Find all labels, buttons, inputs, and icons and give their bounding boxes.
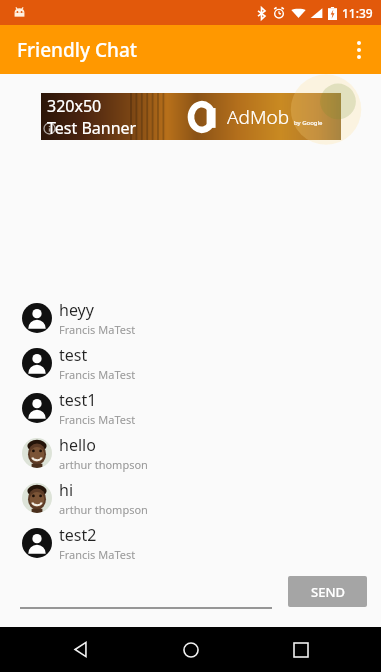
button[interactable]: Message input field	[20, 573, 280, 609]
staticText: test2	[59, 524, 97, 546]
staticText: heyy	[59, 299, 94, 321]
staticText: Test Banner	[47, 117, 137, 139]
staticText: 11:39	[342, 5, 373, 21]
staticText: Francis MaTest	[59, 322, 136, 337]
staticText: test1	[59, 389, 97, 411]
button[interactable]: heyy	[0, 295, 381, 340]
staticText: AdMob	[227, 104, 290, 130]
button[interactable]: hello	[0, 430, 381, 475]
staticText: SEND	[311, 583, 345, 601]
staticText: 320x50	[47, 95, 102, 117]
staticText: hello	[59, 434, 96, 456]
staticText: arthur thompson	[59, 502, 148, 517]
staticText: test	[59, 344, 88, 366]
staticText: arthur thompson	[59, 457, 148, 472]
button[interactable]: AdMob test banner advertisement	[41, 93, 341, 140]
button[interactable]: test1	[0, 385, 381, 430]
staticText: hi	[59, 479, 74, 501]
button[interactable]: SEND	[288, 576, 367, 607]
staticText: Francis MaTest	[59, 367, 136, 382]
staticText: Francis MaTest	[59, 547, 136, 562]
staticText: Friendly Chat	[17, 37, 138, 63]
staticText: by Google	[294, 119, 323, 127]
staticText: Francis MaTest	[59, 412, 136, 427]
button[interactable]: test2	[0, 520, 381, 565]
button[interactable]: hi	[0, 475, 381, 520]
button[interactable]: test	[0, 340, 381, 385]
button[interactable]: Recent apps	[271, 627, 331, 672]
button[interactable]: Home	[161, 627, 221, 672]
button[interactable]: More options	[337, 25, 381, 74]
button[interactable]: Back	[50, 627, 110, 672]
